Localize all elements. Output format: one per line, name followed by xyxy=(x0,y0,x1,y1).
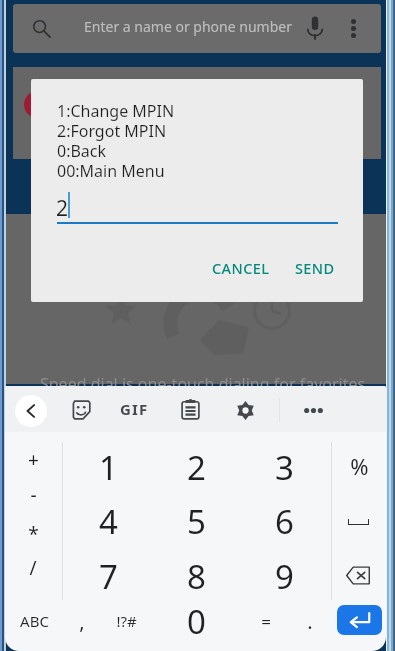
staticText: 0:Back xyxy=(57,140,107,162)
button[interactable]: * xyxy=(11,510,55,558)
staticText: SEND xyxy=(295,258,335,278)
staticText: 2 xyxy=(187,445,206,490)
staticText: CANCEL xyxy=(212,258,270,278)
button[interactable]: 5 xyxy=(174,497,218,545)
button[interactable]: Backspace xyxy=(340,559,376,591)
button[interactable]: 4 xyxy=(86,497,130,545)
button[interactable]: 0 xyxy=(174,597,218,645)
button[interactable]: Enter xyxy=(337,605,382,635)
button[interactable]: + xyxy=(11,436,55,484)
button[interactable]: 9 xyxy=(262,552,306,600)
staticText: / xyxy=(29,555,37,581)
button[interactable]: Settings xyxy=(228,393,262,427)
button[interactable]: More options xyxy=(338,12,368,44)
button[interactable]: - xyxy=(11,471,55,519)
staticText: 0 xyxy=(187,599,206,644)
staticText: ABC xyxy=(20,611,49,631)
button[interactable]: GIF xyxy=(112,396,156,422)
staticText: % xyxy=(350,451,369,481)
staticText: 1:Change MPIN xyxy=(57,100,175,122)
button[interactable]: CANCEL xyxy=(203,251,279,285)
staticText: 5 xyxy=(187,499,206,544)
button[interactable]: = xyxy=(244,597,288,645)
staticText: 2:Forgot MPIN xyxy=(57,120,167,142)
staticText: GIF xyxy=(120,399,149,419)
staticText: 8 xyxy=(187,554,206,599)
button[interactable]: More options xyxy=(296,393,330,427)
button[interactable]: % xyxy=(337,442,381,490)
button[interactable]: SEND xyxy=(284,251,346,285)
button[interactable]: Voice search xyxy=(299,12,330,44)
button[interactable]: Enter a name or phone number xyxy=(13,4,381,53)
staticText: 2 xyxy=(56,194,69,223)
button[interactable]: 7 xyxy=(86,552,130,600)
staticText: 9 xyxy=(275,554,294,599)
button[interactable]: ABC xyxy=(12,597,56,645)
button[interactable]: 6 xyxy=(262,497,306,545)
button[interactable]: Clipboard xyxy=(173,392,207,426)
button[interactable]: 8 xyxy=(174,552,218,600)
staticText: Enter a name or phone number xyxy=(84,17,292,36)
button[interactable]: 2 xyxy=(174,443,218,491)
button[interactable]: Stickers xyxy=(64,393,98,427)
staticText: - xyxy=(30,482,37,508)
staticText: 7 xyxy=(99,554,118,599)
staticText: 6 xyxy=(275,499,294,544)
button[interactable]: 3 xyxy=(262,443,306,491)
button[interactable]: !?# xyxy=(104,597,148,645)
staticText: , xyxy=(79,608,85,635)
staticText: * xyxy=(28,521,39,547)
staticText: = xyxy=(261,610,271,633)
button[interactable]: / xyxy=(11,544,55,592)
staticText: !?# xyxy=(116,611,137,631)
staticText: Speed dial is one-touch dialing for favo… xyxy=(40,373,366,395)
staticText: + xyxy=(28,447,39,473)
staticText: 00:Main Menu xyxy=(57,160,165,182)
button[interactable]: , xyxy=(60,597,104,645)
staticText: 4 xyxy=(99,499,118,544)
staticText: . xyxy=(307,608,313,635)
button[interactable]: 1 xyxy=(86,443,130,491)
button[interactable]: . xyxy=(288,597,332,645)
button[interactable]: Space xyxy=(340,505,376,537)
staticText: 1 xyxy=(99,445,118,490)
staticText: 3 xyxy=(275,445,294,490)
button[interactable]: Back xyxy=(15,395,47,427)
